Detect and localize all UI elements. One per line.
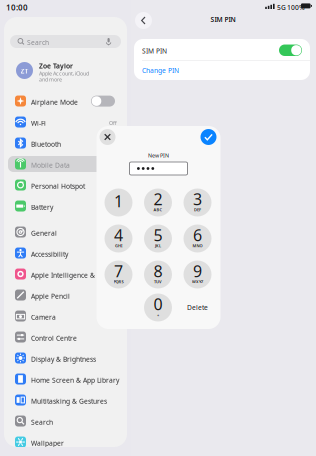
staticText: Multitasking & Gestures xyxy=(31,397,107,406)
staticText: Zoe Taylor xyxy=(39,62,73,70)
button[interactable]: Apple Pencil xyxy=(4,287,127,303)
button[interactable]: Change PIN xyxy=(134,60,310,80)
button[interactable]: Control Centre xyxy=(4,329,127,345)
staticText: ABC xyxy=(153,207,162,212)
staticText: 3 xyxy=(193,188,202,210)
staticText: JKL xyxy=(155,243,161,248)
staticText: 8 xyxy=(153,260,162,282)
staticText: 10:00 xyxy=(6,2,28,13)
button[interactable]: Wi-Fi xyxy=(4,114,127,130)
staticText: MNO xyxy=(192,243,202,248)
staticText: and more xyxy=(39,76,62,83)
staticText: New PIN xyxy=(148,152,169,159)
staticText: Apple Intelligence & Siri xyxy=(31,271,108,280)
button[interactable]: Bluetooth xyxy=(4,135,127,151)
staticText: ZT xyxy=(20,67,28,75)
staticText: Camera xyxy=(31,313,56,322)
button[interactable]: Display & Brightness xyxy=(4,350,127,366)
button[interactable]: 0 xyxy=(144,293,172,321)
staticText: Bluetooth xyxy=(31,140,61,149)
staticText: Off xyxy=(109,119,117,126)
button[interactable]: Apple Intelligence & Siri xyxy=(4,266,127,282)
staticText: Search xyxy=(31,418,53,427)
staticText: 5 xyxy=(153,224,162,246)
button[interactable]: Airplane Mode xyxy=(4,93,127,109)
button[interactable]: Accessibility xyxy=(4,245,127,261)
button[interactable]: General xyxy=(4,224,127,240)
staticText: Personal Hotspot xyxy=(31,182,85,191)
staticText: Search xyxy=(27,38,49,47)
staticText: Apple Account, iCloud xyxy=(39,70,89,77)
button[interactable]: SIM PIN xyxy=(279,44,302,56)
button[interactable]: Search xyxy=(4,413,127,429)
staticText: Change PIN xyxy=(142,66,179,75)
staticText: 9 xyxy=(193,260,202,282)
staticText: TUV xyxy=(154,279,162,284)
button[interactable]: Back xyxy=(135,12,152,29)
staticText: Wi-Fi xyxy=(31,119,46,128)
button[interactable]: Battery xyxy=(4,198,127,214)
button[interactable]: 9 xyxy=(183,260,211,288)
staticText: DEF xyxy=(194,207,201,212)
staticText: Display & Brightness xyxy=(31,355,96,364)
button[interactable]: 8 xyxy=(144,260,172,288)
staticText: PQRS xyxy=(113,279,123,284)
button[interactable]: Mobile Data xyxy=(4,156,127,172)
staticText: 0 xyxy=(153,293,162,315)
button[interactable]: Delete xyxy=(180,293,214,321)
staticText: 4 xyxy=(114,224,123,246)
button[interactable]: 3 xyxy=(183,188,211,216)
staticText: 2 xyxy=(153,188,162,210)
staticText: Airplane Mode xyxy=(31,98,78,107)
staticText: Wallpaper xyxy=(31,439,64,448)
staticText: Home Screen & App Library xyxy=(31,376,119,385)
button[interactable]: 5 xyxy=(144,224,172,252)
staticText: SIM PIN xyxy=(210,15,235,24)
staticText: Battery xyxy=(31,203,53,212)
staticText: Delete xyxy=(187,303,208,312)
staticText: Mobile Data xyxy=(31,161,70,170)
staticText: Apple Pencil xyxy=(31,292,70,301)
staticText: + xyxy=(157,312,159,317)
button[interactable]: Home Screen & App Library xyxy=(4,371,127,387)
button[interactable]: Personal Hotspot xyxy=(4,177,127,193)
button[interactable]: ZT xyxy=(4,58,127,83)
button[interactable]: 4 xyxy=(104,224,132,252)
button[interactable]: Multitasking & Gestures xyxy=(4,392,127,408)
staticText: SIM PIN xyxy=(142,46,167,55)
button[interactable]: Confirm xyxy=(200,129,216,145)
staticText: Accessibility xyxy=(31,250,68,259)
staticText: General xyxy=(31,229,57,238)
button[interactable]: 1 xyxy=(104,188,132,216)
staticText: 7 xyxy=(114,260,123,282)
staticText: 5G xyxy=(277,3,286,12)
staticText: 6 xyxy=(193,224,202,246)
button[interactable]: Camera xyxy=(4,308,127,324)
button[interactable]: 7 xyxy=(104,260,132,288)
staticText: 100% xyxy=(287,3,305,12)
button[interactable]: 6 xyxy=(183,224,211,252)
staticText: GHI xyxy=(115,243,122,248)
staticText: Control Centre xyxy=(31,334,77,343)
button[interactable]: Wallpaper xyxy=(4,434,127,450)
staticText: WXYZ xyxy=(192,279,203,284)
button[interactable]: 2 xyxy=(144,188,172,216)
button[interactable]: Close xyxy=(99,129,115,145)
staticText: 1 xyxy=(114,190,123,212)
